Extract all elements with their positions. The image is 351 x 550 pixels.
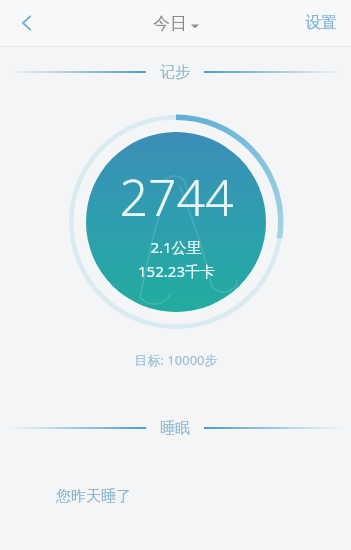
staticText: 今日 — [153, 13, 187, 34]
button[interactable]: 今日 — [153, 13, 199, 34]
staticText: 目标: 10000步 — [134, 351, 218, 369]
button[interactable]: 您昨天睡了 — [0, 487, 351, 506]
button[interactable]: 设置 — [291, 0, 351, 46]
staticText: 睡眠 — [160, 419, 190, 438]
staticText: 设置 — [305, 13, 337, 33]
staticText: 记步 — [160, 63, 190, 82]
staticText: 2744 — [119, 163, 234, 231]
staticText: 您昨天睡了 — [56, 487, 131, 506]
button[interactable]: Back — [0, 0, 54, 46]
staticText: 2.1公里 — [150, 237, 202, 257]
button[interactable]: 2744 — [68, 114, 284, 330]
staticText: 152.23千卡 — [138, 261, 215, 281]
